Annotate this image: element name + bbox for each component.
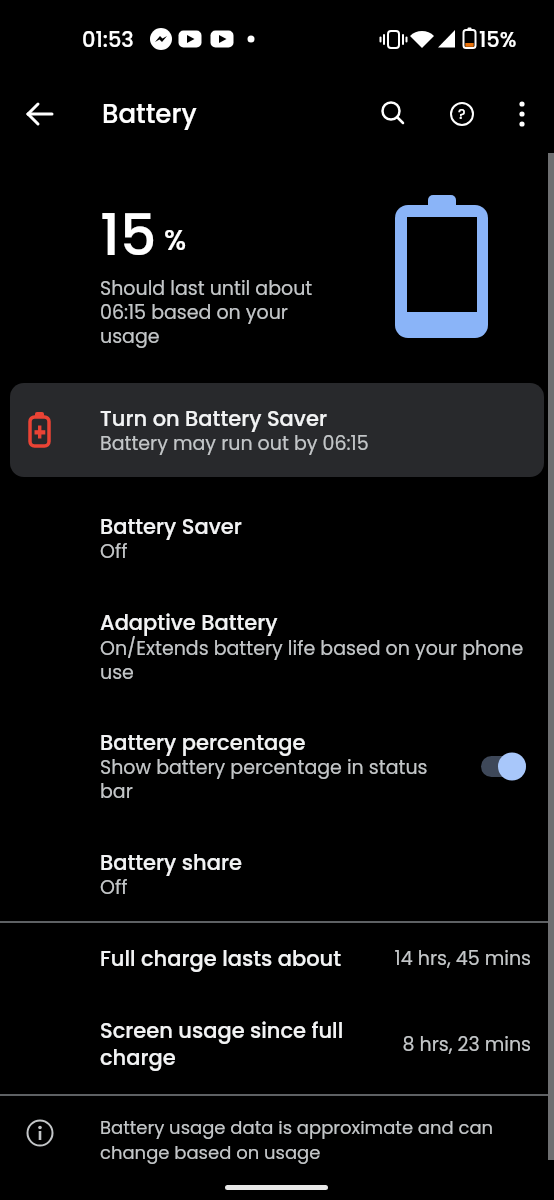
staticText: Battery share xyxy=(100,848,242,877)
staticText: Battery usage data is approximate and ca… xyxy=(100,1115,494,1166)
staticText: 8 hrs, 23 mins xyxy=(402,1031,531,1058)
staticText: Full charge lasts about xyxy=(100,944,341,973)
button[interactable]: Turn on Battery Saver xyxy=(10,383,544,477)
button[interactable] xyxy=(16,90,64,138)
button[interactable]: Screen usage since full charge xyxy=(0,1007,554,1079)
staticText: Battery xyxy=(102,96,197,132)
staticText: 15% xyxy=(479,25,517,54)
staticText: Battery percentage xyxy=(100,728,306,757)
staticText: Off xyxy=(100,538,128,565)
button[interactable]: Adaptive Battery xyxy=(0,601,554,693)
staticText: Battery Saver xyxy=(100,512,242,541)
staticText: 01:53 xyxy=(82,25,134,54)
staticText: Battery may run out by 06:15 xyxy=(100,430,369,457)
staticText: ? xyxy=(458,104,466,124)
staticText: Adaptive Battery xyxy=(100,608,278,637)
button[interactable]: Battery share xyxy=(0,841,554,909)
button[interactable] xyxy=(369,90,417,138)
staticText: Screen usage since full charge xyxy=(100,1016,344,1072)
staticText: Show battery percentage in status bar xyxy=(100,754,428,804)
staticText: % xyxy=(164,221,187,259)
button[interactable]: Full charge lasts about xyxy=(0,934,554,982)
staticText: 15 xyxy=(100,195,157,272)
button[interactable]: Battery percentage xyxy=(0,721,554,813)
staticText: Should last until about 06:15 based on y… xyxy=(100,275,313,349)
button[interactable]: ? xyxy=(438,90,486,138)
button[interactable] xyxy=(471,745,537,787)
staticText: 14 hrs, 45 mins xyxy=(394,945,531,972)
staticText: Turn on Battery Saver xyxy=(100,404,327,433)
staticText: Off xyxy=(100,874,128,901)
button[interactable] xyxy=(498,90,546,138)
button[interactable]: Battery Saver xyxy=(0,505,554,573)
staticText: On/Extends battery life based on your ph… xyxy=(100,635,524,685)
